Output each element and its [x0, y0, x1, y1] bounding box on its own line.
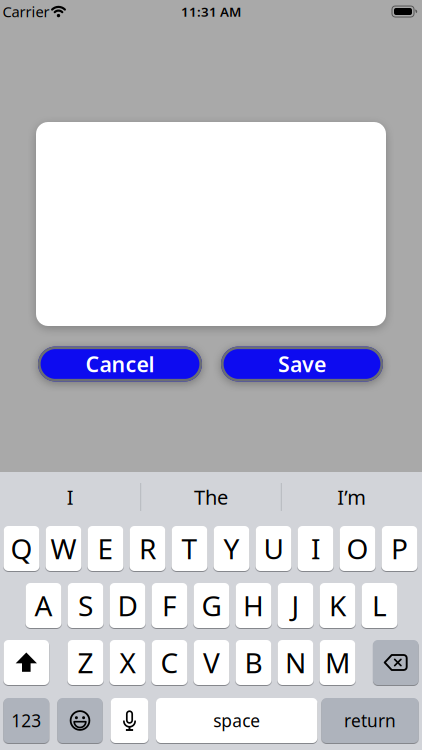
staticText: Q [10, 530, 32, 567]
staticText: S [78, 587, 93, 624]
staticText: U [263, 530, 283, 567]
staticText: H [243, 587, 264, 624]
staticText: The [194, 484, 228, 510]
staticText: C [160, 644, 178, 681]
button[interactable]: W [45, 526, 81, 571]
button[interactable]: H [235, 583, 271, 628]
button[interactable]: return [321, 698, 418, 743]
staticText: Cancel [85, 350, 154, 378]
button[interactable]: P [381, 526, 417, 571]
button[interactable]: B [235, 640, 271, 685]
staticText: O [346, 530, 368, 567]
button[interactable]: X [109, 640, 145, 685]
staticText: K [329, 587, 346, 624]
button[interactable]: The [146, 475, 276, 519]
button[interactable]: Y [213, 526, 249, 571]
button[interactable]: K [319, 583, 355, 628]
staticText: 11:31 AM [181, 3, 241, 20]
staticText: Save [278, 350, 326, 378]
staticText: B [244, 644, 262, 681]
staticText: N [285, 644, 306, 681]
staticText: L [372, 587, 387, 624]
button[interactable]: I [5, 475, 135, 519]
staticText: 123 [11, 709, 41, 732]
staticText: G [201, 587, 221, 624]
button[interactable]: Cancel [38, 346, 202, 381]
button[interactable]: Save [221, 346, 383, 381]
staticText: W [50, 530, 76, 567]
staticText: T [181, 530, 197, 567]
button[interactable]: I [297, 526, 333, 571]
button[interactable]: U [255, 526, 291, 571]
button[interactable]: T [171, 526, 207, 571]
button[interactable]: N [277, 640, 313, 685]
button[interactable]: M [319, 640, 355, 685]
staticText: X [119, 644, 135, 681]
button[interactable]: Q [3, 526, 39, 571]
staticText: E [97, 530, 113, 567]
staticText: I’m [337, 484, 366, 510]
button[interactable]: G [193, 583, 229, 628]
button[interactable]: A [25, 583, 61, 628]
staticText: return [344, 709, 396, 732]
button[interactable]: space [156, 698, 317, 743]
button[interactable]: F [151, 583, 187, 628]
button[interactable]: Z [67, 640, 103, 685]
button[interactable]: S [67, 583, 103, 628]
staticText: D [117, 587, 137, 624]
button[interactable]: R [129, 526, 165, 571]
button[interactable]: C [151, 640, 187, 685]
staticText: F [162, 587, 177, 624]
button[interactable]: L [361, 583, 397, 628]
staticText: Carrier [2, 2, 49, 21]
staticText: R [139, 530, 156, 567]
button[interactable]: 123 [3, 698, 49, 743]
staticText: Z [77, 644, 93, 681]
button[interactable]: Dictate [110, 698, 148, 743]
button[interactable]: E [87, 526, 123, 571]
staticText: A [34, 587, 52, 624]
button[interactable]: I’m [287, 475, 417, 519]
staticText: V [203, 644, 220, 681]
staticText: M [325, 644, 350, 681]
button[interactable]: V [193, 640, 229, 685]
staticText: J [291, 587, 299, 624]
staticText: I [311, 530, 320, 567]
button[interactable]: D [109, 583, 145, 628]
button[interactable]: Emoji [57, 698, 102, 743]
staticText: space [213, 709, 260, 732]
button[interactable]: J [277, 583, 313, 628]
button[interactable]: O [339, 526, 375, 571]
button[interactable]: Delete [373, 640, 418, 685]
staticText: P [391, 530, 408, 567]
button[interactable]: Shift [3, 640, 49, 685]
staticText: Y [223, 530, 239, 567]
staticText: I [67, 484, 74, 510]
